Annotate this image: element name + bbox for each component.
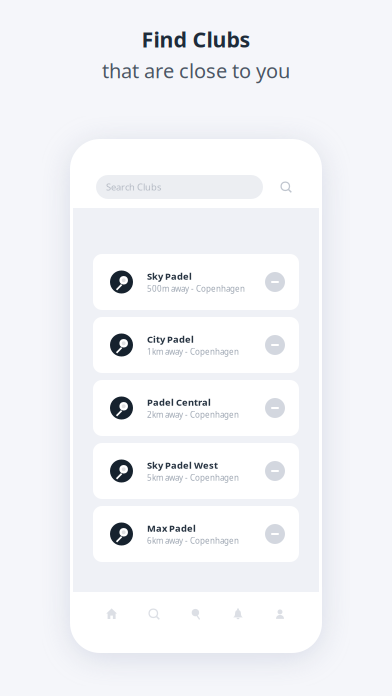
staticText: Max Padel: [147, 522, 196, 534]
staticText: 1km away - Copenhagen: [147, 346, 239, 357]
staticText: City Padel: [147, 333, 194, 345]
staticText: 5km away - Copenhagen: [147, 472, 239, 483]
button[interactable]: Matches: [175, 600, 217, 628]
button[interactable]: Search: [273, 174, 299, 200]
button[interactable]: Home: [91, 600, 133, 628]
button[interactable]: Search: [133, 600, 175, 628]
button[interactable]: Sky Padel: [93, 254, 299, 310]
staticText: 2km away - Copenhagen: [147, 409, 239, 420]
button[interactable]: Sky Padel West: [93, 443, 299, 499]
button[interactable]: City Padel: [93, 317, 299, 373]
staticText: 500m away - Copenhagen: [147, 283, 245, 294]
staticText: Padel Central: [147, 396, 211, 408]
button[interactable]: Notifications: [217, 600, 259, 628]
staticText: Search Clubs: [106, 181, 161, 193]
staticText: Sky Padel West: [147, 459, 218, 471]
staticText: Find Clubs: [141, 25, 250, 53]
button[interactable]: Padel Central: [93, 380, 299, 436]
staticText: that are close to you: [102, 57, 290, 84]
staticText: 6km away - Copenhagen: [147, 535, 239, 546]
button[interactable]: Profile: [259, 600, 301, 628]
staticText: Sky Padel: [147, 270, 192, 282]
button[interactable]: Max Padel: [93, 506, 299, 562]
